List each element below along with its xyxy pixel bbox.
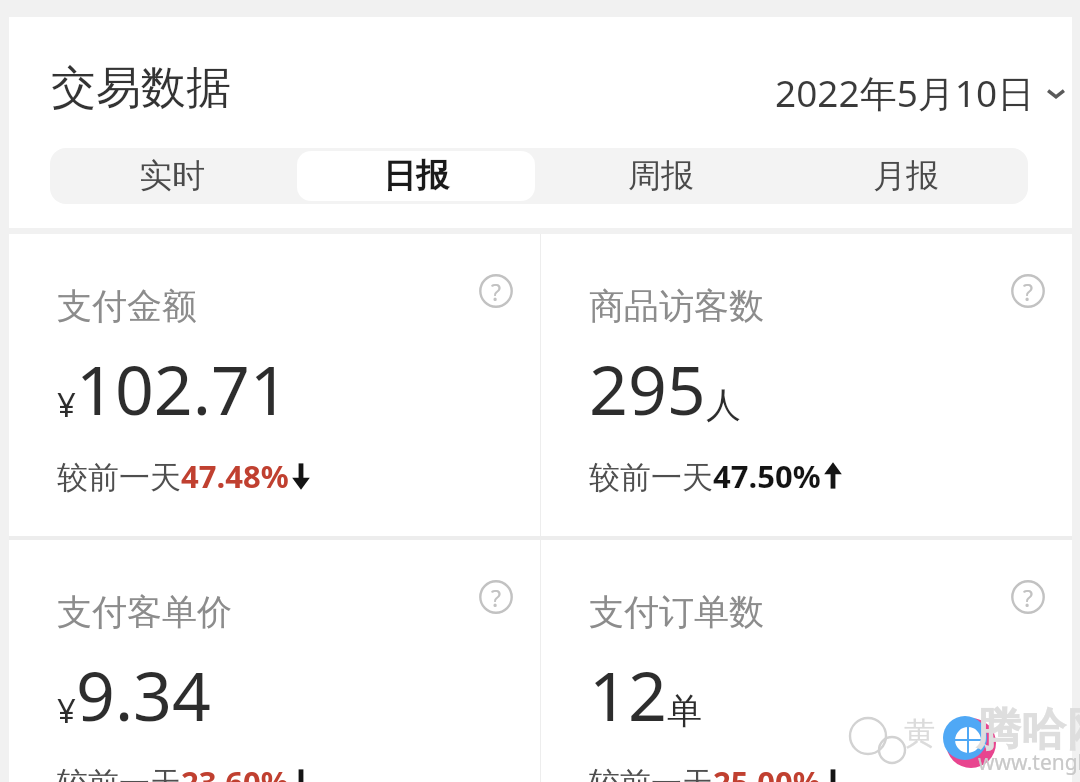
staticText: 较前一天23.60% [57, 761, 289, 782]
staticText: 支付金额 [57, 284, 197, 328]
staticText: 9.34 [76, 648, 211, 741]
staticText: 较前一天47.48% [57, 455, 289, 497]
staticText: 支付订单数 [589, 590, 764, 634]
button[interactable]: 帮助说明 [9, 234, 540, 536]
staticText: 周报 [628, 155, 694, 197]
staticText: 人 [706, 383, 741, 427]
staticText: 交易数据 [51, 60, 231, 117]
staticText: ? [491, 582, 501, 613]
staticText: 实时 [139, 155, 205, 197]
staticText: 较前一天25.00% [589, 761, 821, 782]
staticText: ¥ [57, 688, 76, 733]
staticText: 腾哈网 [976, 702, 1080, 759]
staticText: 月报 [873, 155, 939, 197]
button[interactable]: 帮助说明 [479, 580, 513, 614]
button[interactable]: 周报 [541, 151, 780, 201]
button[interactable]: 帮助说明 [541, 234, 1072, 536]
staticText: 295 [589, 342, 706, 435]
staticText: ? [1023, 276, 1033, 307]
staticText: 商品访客数 [589, 284, 764, 328]
staticText: 2022年5月10日 [775, 67, 1035, 118]
button[interactable]: 帮助说明 [479, 274, 513, 308]
button[interactable]: 实时 [53, 151, 291, 201]
button[interactable]: 帮助说明 [9, 540, 540, 782]
button[interactable]: 帮助说明 [541, 540, 1072, 782]
staticText: 单 [667, 689, 702, 733]
staticText: 支付客单价 [57, 590, 232, 634]
staticText: 12 [589, 648, 667, 741]
staticText: ¥ [57, 382, 76, 427]
staticText: www.tengha.com [978, 748, 1080, 777]
staticText: 日报 [383, 155, 449, 197]
staticText: ? [1023, 582, 1033, 613]
button[interactable]: 帮助说明 [1011, 580, 1045, 614]
staticText: 黄 [904, 714, 935, 753]
button[interactable]: 月报 [786, 151, 1025, 201]
staticText: ? [491, 276, 501, 307]
staticText: 102.71 [76, 342, 289, 435]
button[interactable]: 帮助说明 [1011, 274, 1045, 308]
button[interactable]: 日报 [297, 151, 535, 201]
button[interactable]: 2022年5月10日 [775, 67, 1068, 118]
staticText: 较前一天47.50% [589, 455, 821, 497]
